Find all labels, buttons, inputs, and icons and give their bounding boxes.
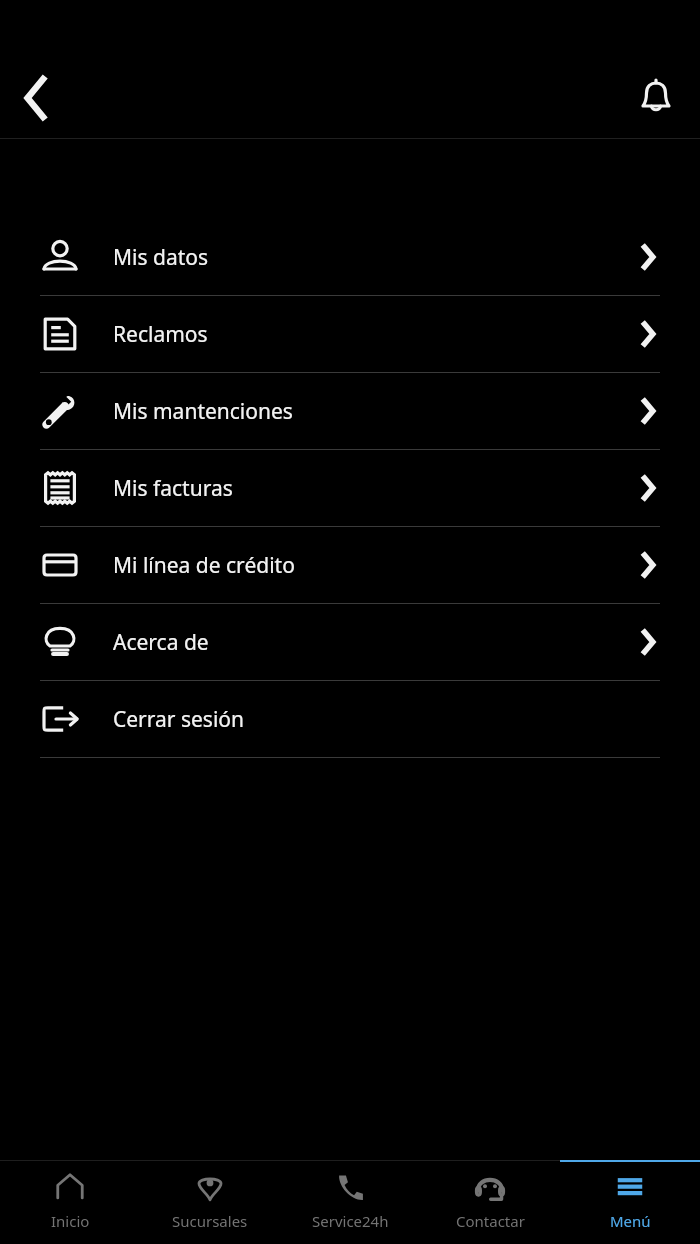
button[interactable]: Reclamos <box>0 296 700 373</box>
button[interactable]: Mis facturas <box>0 450 700 527</box>
staticText: Mis mantenciones <box>113 397 293 426</box>
staticText: Mis facturas <box>113 474 233 503</box>
staticText: Service24h <box>312 1211 389 1231</box>
staticText: Menú <box>610 1211 651 1231</box>
button[interactable]: Sucursales <box>140 1160 280 1244</box>
button[interactable]: Acerca de <box>0 604 700 681</box>
staticText: Mi línea de crédito <box>113 551 295 580</box>
button[interactable]: Notifications <box>628 70 684 126</box>
button[interactable]: Mis datos <box>0 219 700 296</box>
staticText: Inicio <box>51 1211 90 1231</box>
staticText: Contactar <box>456 1211 525 1231</box>
button[interactable]: Inicio <box>0 1160 140 1244</box>
button[interactable]: Mis mantenciones <box>0 373 700 450</box>
staticText: Sucursales <box>172 1211 248 1231</box>
button[interactable]: Menú <box>560 1160 700 1244</box>
button[interactable]: Contactar <box>420 1160 560 1244</box>
staticText: Acerca de <box>113 628 209 657</box>
button[interactable]: Cerrar sesión <box>0 681 700 758</box>
staticText: Reclamos <box>113 320 208 349</box>
button[interactable]: Mi línea de crédito <box>0 527 700 604</box>
staticText: Cerrar sesión <box>113 705 245 734</box>
staticText: Mis datos <box>113 243 209 272</box>
button[interactable]: Service24h <box>280 1160 420 1244</box>
button[interactable]: Back <box>8 70 64 126</box>
